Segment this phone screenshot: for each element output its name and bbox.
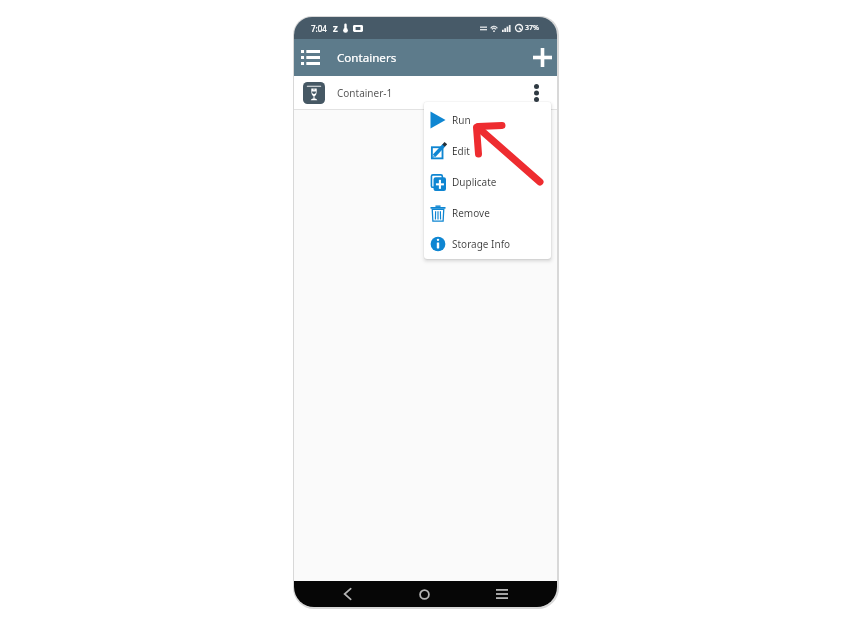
- staticText: Edit: [452, 144, 470, 158]
- staticText: Storage Info: [452, 237, 511, 251]
- staticText: 7:04: [311, 23, 327, 34]
- button[interactable]: Container-1: [294, 76, 557, 109]
- button[interactable]: Remove: [424, 197, 551, 228]
- button[interactable]: Run: [424, 104, 551, 135]
- staticText: Z: [333, 23, 338, 34]
- staticText: Containers: [337, 50, 397, 66]
- button[interactable]: Edit: [424, 135, 551, 166]
- button[interactable]: Storage Info: [424, 228, 551, 259]
- button[interactable]: Back: [333, 581, 361, 607]
- staticText: Container-1: [337, 86, 393, 100]
- button[interactable]: Home: [410, 581, 439, 607]
- staticText: Duplicate: [452, 175, 497, 189]
- staticText: Remove: [452, 206, 490, 220]
- button[interactable]: Navigation menu: [297, 39, 324, 76]
- staticText: Run: [452, 113, 471, 127]
- button[interactable]: Add container: [527, 39, 557, 76]
- button[interactable]: Duplicate: [424, 166, 551, 197]
- button[interactable]: Recent apps: [488, 581, 516, 607]
- button[interactable]: More options: [523, 80, 549, 106]
- staticText: 37%: [525, 23, 539, 33]
